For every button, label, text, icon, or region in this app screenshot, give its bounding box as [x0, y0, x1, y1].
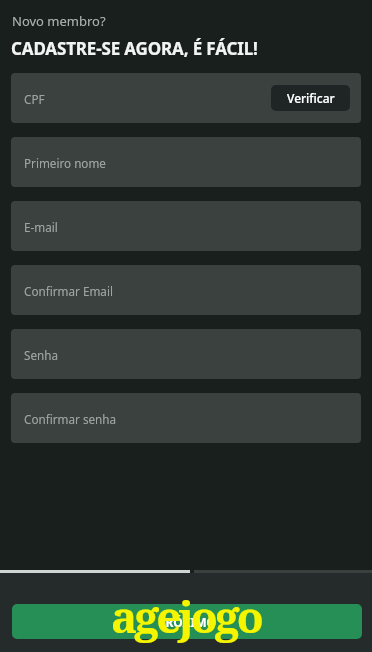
staticText: PRÓXIMO — [158, 614, 217, 630]
button[interactable]: PRÓXIMO — [12, 604, 362, 639]
button[interactable]: Confirmar Email — [11, 265, 361, 315]
staticText: Confirmar senha — [24, 411, 117, 427]
button[interactable]: Senha — [11, 329, 361, 379]
other: Etapa 1 de 2 — [0, 570, 372, 573]
staticText: E-mail — [24, 219, 58, 235]
staticText: CPF — [24, 91, 45, 107]
staticText: Senha — [24, 347, 59, 363]
button[interactable]: CPF — [11, 73, 361, 123]
button[interactable]: Primeiro nome — [11, 137, 361, 187]
staticText: CADASTRE-SE AGORA, É FÁCIL! — [11, 37, 258, 60]
staticText: Confirmar Email — [24, 283, 113, 299]
staticText: Primeiro nome — [24, 155, 106, 171]
staticText: Novo membro? — [12, 12, 106, 30]
button[interactable]: Confirmar senha — [11, 393, 361, 443]
button[interactable]: Verificar — [271, 85, 350, 111]
staticText: agejogo — [111, 586, 261, 646]
button[interactable]: E-mail — [11, 201, 361, 251]
staticText: Verificar — [287, 90, 335, 106]
